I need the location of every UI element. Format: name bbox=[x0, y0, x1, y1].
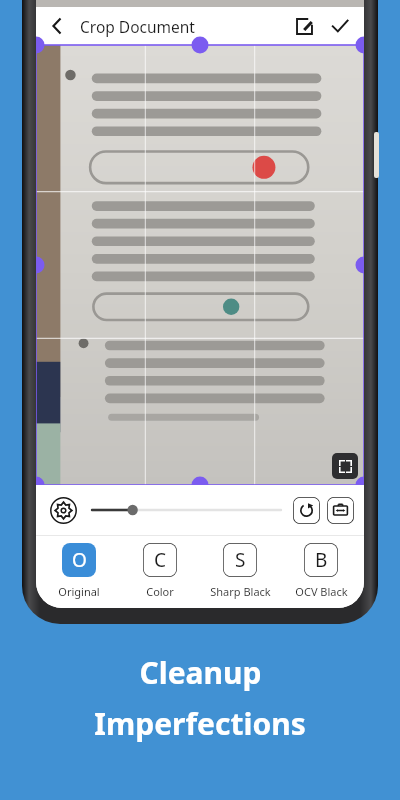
staticText: OCV Black bbox=[295, 584, 348, 599]
button[interactable]: C bbox=[122, 543, 198, 599]
staticText: Color bbox=[146, 584, 174, 599]
staticText: S bbox=[235, 547, 246, 573]
staticText: Imperfections bbox=[94, 703, 306, 744]
button[interactable]: Adjust bbox=[46, 493, 80, 527]
button[interactable]: Edit bbox=[286, 8, 322, 44]
staticText: C bbox=[154, 547, 167, 573]
button[interactable]: Back bbox=[40, 9, 74, 43]
button[interactable]: B bbox=[283, 543, 359, 599]
staticText: O bbox=[72, 547, 87, 573]
staticText: B bbox=[315, 547, 328, 573]
button[interactable]: Fullscreen bbox=[332, 453, 358, 479]
staticText: Original bbox=[58, 584, 100, 599]
button[interactable]: Resize bbox=[327, 497, 354, 524]
button[interactable]: S bbox=[202, 543, 278, 599]
staticText: Crop Document bbox=[80, 16, 195, 37]
staticText: Cleanup bbox=[139, 652, 262, 693]
staticText: Sharp Black bbox=[210, 584, 271, 599]
button[interactable]: O bbox=[41, 543, 117, 599]
button[interactable]: Rotate bbox=[293, 497, 320, 524]
button[interactable] bbox=[92, 497, 281, 523]
button[interactable]: Done bbox=[322, 8, 358, 44]
